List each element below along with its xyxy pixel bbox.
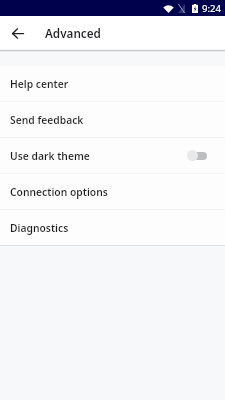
button[interactable]: Send feedback (0, 102, 225, 137)
button[interactable]: Use dark theme (0, 138, 225, 173)
staticText: Advanced (45, 25, 101, 41)
staticText: Diagnostics (10, 221, 69, 235)
button[interactable]: Help center (0, 66, 225, 101)
button[interactable]: Connection options (0, 174, 225, 209)
button[interactable]: Diagnostics (0, 210, 225, 245)
button[interactable]: Back (0, 16, 34, 50)
staticText: 9:24 (202, 2, 221, 15)
staticText: Connection options (10, 185, 108, 199)
staticText: Use dark theme (10, 149, 187, 163)
staticText: Send feedback (10, 113, 84, 127)
staticText: Help center (10, 77, 69, 91)
button[interactable]: Use dark theme toggle, off (187, 150, 207, 161)
